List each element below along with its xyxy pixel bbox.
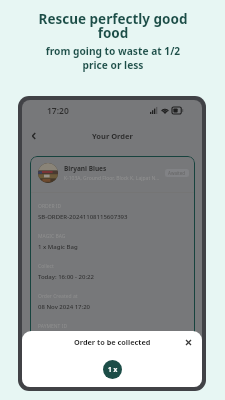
staticText: Collect <box>38 263 54 270</box>
staticText: Rescue perfectly good food <box>37 10 189 42</box>
staticText: Biryani Blues <box>64 164 107 173</box>
button[interactable]: Biryani Blues <box>30 156 195 192</box>
button[interactable]: 1 x <box>103 360 122 379</box>
button[interactable]: Back <box>27 129 41 143</box>
staticText: Order Created at <box>38 293 78 300</box>
staticText: K-103A, Ground Floor, Block K, Lajpat N.… <box>64 175 160 182</box>
staticText: Today: 16:00 - 20:22 <box>38 273 94 281</box>
staticText: Your Order <box>92 131 133 141</box>
staticText: 08 Nov 2024 17:20 <box>38 303 90 311</box>
staticText: PAYMENT ID <box>38 323 68 330</box>
staticText: 1 x Magic Bag <box>38 243 78 251</box>
staticText: SB-ORDER-20241108115607393 <box>38 213 128 221</box>
staticText: 17:20 <box>47 105 69 116</box>
staticText: MAGIC BAG <box>38 233 66 240</box>
button[interactable]: Close <box>182 336 194 348</box>
staticText: ORDER ID <box>38 203 62 210</box>
staticText: Awaited <box>168 170 186 176</box>
staticText: 1 x <box>108 365 118 374</box>
staticText: Order to be collected <box>74 337 151 347</box>
staticText: from going to waste at 1/2 price or less <box>42 44 184 72</box>
